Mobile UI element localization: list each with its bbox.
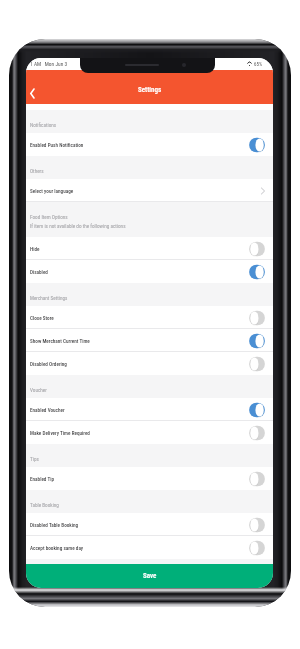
- staticText: Enabled Voucher: [30, 407, 65, 413]
- staticText: Close Store: [30, 315, 54, 321]
- button[interactable]: Back: [26, 84, 38, 102]
- staticText: Merchant Settings: [30, 295, 68, 301]
- staticText: Others: [30, 168, 44, 174]
- button[interactable]: Save: [26, 564, 273, 588]
- staticText: Table Booking: [30, 502, 59, 508]
- button[interactable]: Disabled Ordering: [26, 352, 273, 375]
- button[interactable]: Make Delivery Time Required: [26, 421, 273, 444]
- button[interactable]: Select your language: [26, 179, 273, 202]
- staticText: Disabled: [30, 269, 48, 275]
- staticText: 1 AM Mon Jun 3: [30, 61, 68, 67]
- staticText: Disabled Ordering: [30, 361, 67, 367]
- staticText: Make Delivery Time Required: [30, 430, 90, 436]
- staticText: Settings: [138, 86, 162, 94]
- staticText: If item is not available do the followin…: [30, 223, 126, 229]
- button[interactable]: Enabled Push Notification: [26, 133, 273, 156]
- staticText: Hide: [30, 246, 40, 252]
- button[interactable]: Enabled Voucher: [26, 398, 273, 421]
- button[interactable]: Show Merchant Current Time: [26, 329, 273, 352]
- staticText: Notifications: [30, 122, 57, 128]
- button[interactable]: Enabled Tip: [26, 467, 273, 490]
- staticText: Accept booking same day: [30, 545, 84, 551]
- staticText: Voucher: [30, 387, 47, 393]
- button[interactable]: Hide: [26, 237, 273, 260]
- staticText: Select your language: [30, 188, 74, 194]
- staticText: Tips: [30, 456, 39, 462]
- staticText: Enabled Tip: [30, 476, 55, 482]
- button[interactable]: Disabled: [26, 260, 273, 283]
- button[interactable]: Close Store: [26, 306, 273, 329]
- staticText: 65%: [254, 61, 263, 67]
- button[interactable]: Accept booking same day: [26, 536, 273, 559]
- button[interactable]: Disabled Table Booking: [26, 513, 273, 536]
- staticText: Show Merchant Current Time: [30, 338, 90, 344]
- staticText: Enabled Push Notification: [30, 142, 84, 148]
- staticText: Disabled Table Booking: [30, 522, 79, 528]
- staticText: Save: [143, 572, 157, 580]
- staticText: Food Item Options: [30, 214, 68, 220]
